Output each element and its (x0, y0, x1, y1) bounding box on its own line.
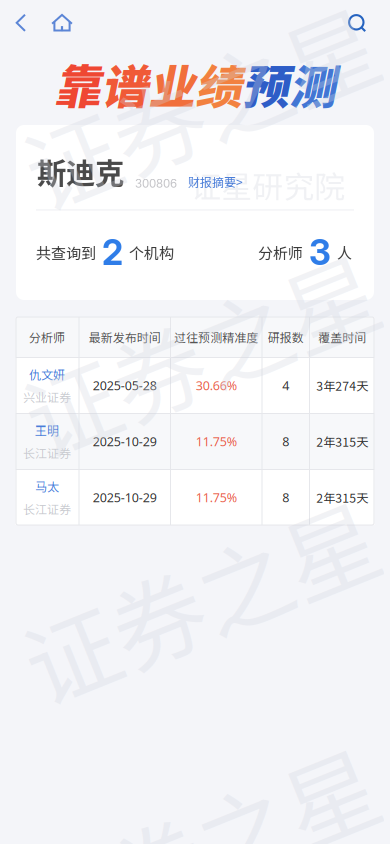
staticText: 仇文妍 (29, 366, 65, 383)
staticText: 共查询到 (36, 242, 96, 263)
staticText: 2025-10-29 (93, 433, 157, 450)
staticText: 业 (148, 50, 195, 118)
staticText: 王明 (35, 422, 59, 439)
staticText: 3 (309, 231, 331, 273)
staticText: 证券之星 (14, 284, 386, 419)
staticText: 绩 (195, 50, 242, 118)
staticText: 300806 (135, 177, 177, 190)
staticText: 长江证券 (23, 500, 71, 517)
staticText: 分析师 (29, 328, 65, 346)
staticText: 2025-10-29 (93, 489, 157, 506)
staticText: 研报数 (268, 328, 304, 346)
staticText: 谱 (101, 50, 148, 118)
staticText: 最新发布时间 (89, 328, 161, 346)
staticText: 证券之星 (14, 37, 386, 172)
staticText: 11.75% (196, 433, 237, 450)
staticText: 证券之星 (14, 531, 386, 666)
staticText: 个机构 (129, 242, 174, 263)
staticText: 过往预测精准度 (174, 328, 258, 346)
staticText: 斯迪克 (37, 150, 124, 192)
staticText: 8 (282, 433, 289, 450)
button[interactable]: Home (40, 1, 84, 45)
staticText: 财报摘要> (188, 173, 243, 190)
staticText: 证星研究院 (190, 163, 345, 207)
staticText: 4 (282, 377, 289, 394)
staticText: 11.75% (196, 489, 237, 506)
staticText: 靠 (54, 50, 101, 118)
staticText: 30.66% (196, 377, 237, 394)
button[interactable]: Back (2, 1, 40, 45)
staticText: 覆盖时间 (318, 328, 366, 346)
staticText: 2年315天 (316, 433, 368, 450)
staticText: 测 (289, 50, 336, 118)
staticText: 2 (102, 231, 123, 273)
staticText: 兴业证券 (23, 388, 71, 405)
staticText: 人 (337, 242, 352, 263)
staticText: 长江证券 (23, 444, 71, 461)
staticText: 3年274天 (316, 377, 368, 394)
staticText: 2025-05-28 (93, 377, 157, 394)
staticText: 8 (282, 489, 289, 506)
button[interactable]: 财报摘要> (177, 173, 243, 192)
staticText: 预 (242, 50, 289, 118)
staticText: 证券之星 (14, 778, 386, 844)
staticText: 马太 (35, 478, 59, 495)
button[interactable]: Search (335, 1, 379, 45)
staticText: 分析师 (258, 242, 303, 263)
staticText: 2年315天 (316, 489, 368, 506)
